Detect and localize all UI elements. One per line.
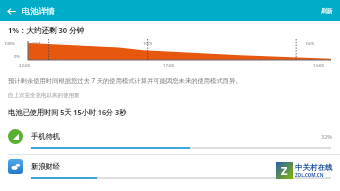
staticText: 22:00	[19, 62, 30, 68]
button[interactable]: 新浪财经	[0, 155, 340, 184]
button[interactable]: 刷新	[315, 2, 340, 19]
staticText: 17:00	[163, 62, 174, 68]
button[interactable]: Back	[4, 4, 18, 18]
staticText: Z	[281, 163, 288, 178]
staticText: 中关村在线	[295, 163, 333, 172]
staticText: 32%	[321, 133, 332, 140]
staticText: 手机待机	[31, 132, 60, 141]
staticText: 电池详情	[22, 6, 55, 16]
staticText: 0%	[14, 53, 21, 59]
staticText: 10/1	[32, 40, 41, 46]
staticText: 13%	[321, 163, 332, 170]
staticText: 100%	[4, 40, 15, 46]
staticText: 10/6	[305, 40, 314, 46]
staticText: 自上次完全充电以来的使用量	[8, 92, 80, 99]
staticText: 新浪财经	[31, 162, 60, 171]
staticText: ZOL.COM.CN	[295, 172, 324, 178]
staticText: 1%：大约还剩 30 分钟	[8, 25, 85, 35]
staticText: 10/3	[143, 40, 152, 46]
staticText: 预计剩余使用时间根据您过去 7 天的使用模式计算并可能因您未来的使用模式而异。	[8, 76, 242, 85]
staticText: 13:00	[313, 62, 324, 68]
button[interactable]: 手机待机	[0, 125, 340, 154]
staticText: 电池已使用时间 5天 15小时 16分 3秒	[8, 107, 127, 117]
staticText: 刷新	[321, 7, 333, 14]
